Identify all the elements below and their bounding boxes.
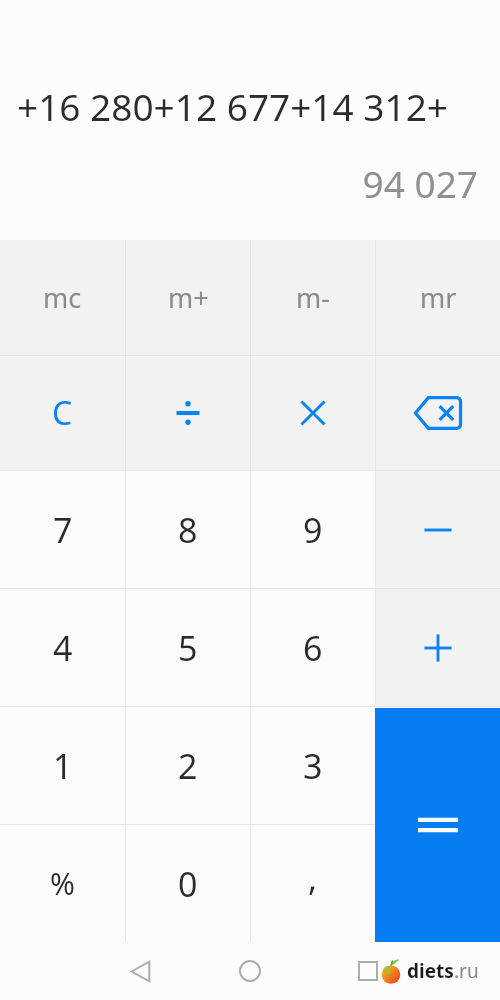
staticText: 3 [303,743,323,789]
button[interactable]: m- [251,240,375,355]
button[interactable]: Home [232,953,268,989]
staticText: 5 [178,625,198,671]
staticText: mr [420,279,457,316]
button[interactable]: Recent apps [350,953,386,989]
button[interactable]: 2 [126,707,250,824]
button[interactable]: Equals [375,708,500,942]
staticText: C [52,391,73,435]
staticText: , [308,855,318,901]
staticText: 7 [53,507,73,553]
button[interactable]: Plus [376,589,500,706]
button[interactable]: 7 [0,471,125,588]
staticText: .ru [454,958,479,984]
button[interactable]: 3 [251,707,375,824]
button[interactable]: 6 [251,589,375,706]
staticText: 1 [53,743,73,789]
staticText: 6 [303,625,323,671]
button[interactable]: mr [376,240,500,355]
staticText: 94 027 [362,158,478,208]
staticText: 2 [178,743,198,789]
staticText: 8 [178,507,198,553]
button[interactable]: 1 [0,707,125,824]
staticText: m+ [168,279,209,316]
staticText: m- [296,279,330,316]
staticText: 0 [178,861,198,907]
staticText: +16 280+12 677+14 312+ [17,81,448,131]
button[interactable]: % [0,825,125,942]
button[interactable]: Back [122,953,158,989]
button[interactable]: 9 [251,471,375,588]
staticText: diets [407,958,454,984]
button[interactable]: 8 [126,471,250,588]
button[interactable]: C [0,356,125,470]
button[interactable]: 5 [126,589,250,706]
button[interactable]: Divide [126,356,250,470]
button[interactable]: Minus [376,471,500,588]
button[interactable]: Backspace [376,356,500,470]
staticText: 4 [53,625,73,671]
staticText: mc [43,279,82,316]
button[interactable]: 4 [0,589,125,706]
staticText: % [50,863,75,904]
button[interactable]: , [251,825,375,942]
staticText: 9 [303,507,323,553]
button[interactable]: mc [0,240,125,355]
button[interactable]: m+ [126,240,250,355]
button[interactable]: 0 [126,825,250,942]
button[interactable]: Multiply [251,356,375,470]
